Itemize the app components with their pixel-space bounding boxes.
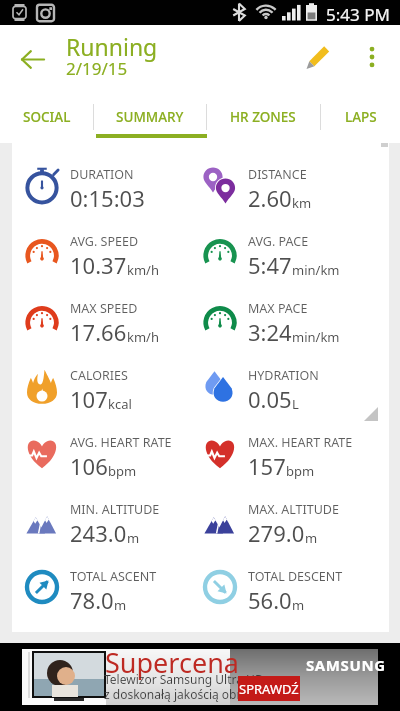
staticText: 279.0: [248, 518, 305, 548]
staticText: 5:47: [248, 250, 292, 280]
staticText: HR ZONES: [230, 108, 296, 126]
staticText: MAX PACE: [248, 300, 308, 317]
staticText: m: [292, 596, 305, 614]
staticText: 56.0: [248, 585, 292, 615]
staticText: Telewizor Samsung Ultra HD: [104, 671, 264, 687]
button[interactable]: DURATION: [12, 155, 190, 222]
staticText: Running: [66, 31, 158, 62]
staticText: CALORIES: [70, 367, 128, 384]
button[interactable]: AVG. HEART RATE: [12, 423, 190, 490]
button[interactable]: Edit: [296, 35, 340, 79]
staticText: z doskonałą jakością obrazu: [104, 686, 262, 702]
staticText: 5:43 PM: [326, 3, 390, 26]
staticText: AVG. HEART RATE: [70, 434, 172, 451]
button[interactable]: SOCIAL: [0, 97, 93, 137]
staticText: DURATION: [70, 166, 134, 183]
staticText: LAPS: [345, 108, 377, 126]
staticText: TOTAL ASCENT: [70, 568, 157, 585]
staticText: 3:24: [248, 317, 292, 347]
staticText: AVG. PACE: [248, 233, 309, 250]
staticText: Supercena: [105, 644, 239, 681]
button[interactable]: LAPS: [320, 97, 400, 137]
staticText: L: [292, 395, 299, 413]
button[interactable]: AVG. PACE: [190, 222, 368, 289]
staticText: m: [114, 596, 127, 614]
button[interactable]: MIN. ALTITUDE: [12, 490, 190, 557]
staticText: MAX. ALTITUDE: [248, 501, 339, 518]
button[interactable]: TOTAL ASCENT: [12, 557, 190, 624]
staticText: m: [305, 529, 318, 547]
staticText: 2/19/15: [66, 57, 128, 80]
button[interactable]: More options: [350, 35, 394, 79]
button[interactable]: Navigate up: [8, 35, 56, 83]
button[interactable]: DISTANCE: [190, 155, 368, 222]
staticText: SAMSUNG: [306, 655, 386, 675]
staticText: SUMMARY: [116, 108, 184, 126]
staticText: DISTANCE: [248, 166, 307, 183]
staticText: TOTAL DESCENT: [248, 568, 343, 585]
button[interactable]: TOTAL DESCENT: [190, 557, 368, 624]
staticText: 2.60: [248, 183, 292, 213]
staticText: MAX. HEART RATE: [248, 434, 353, 451]
staticText: bpm: [286, 462, 315, 480]
staticText: 106: [70, 451, 108, 481]
button[interactable]: SPRAWDŹ: [238, 676, 300, 701]
staticText: min/km: [292, 328, 340, 346]
staticText: 243.0: [70, 518, 127, 548]
button[interactable]: SUMMARY: [93, 97, 206, 137]
staticText: 157: [248, 451, 286, 481]
button[interactable]: MAX SPEED: [12, 289, 190, 356]
staticText: SPRAWDŹ: [239, 680, 299, 698]
staticText: HYDRATION: [248, 367, 319, 384]
staticText: 0:15:03: [70, 183, 145, 213]
staticText: 107: [70, 384, 108, 414]
button[interactable]: Supercena: [0, 643, 400, 711]
staticText: AVG. SPEED: [70, 233, 139, 250]
staticText: MIN. ALTITUDE: [70, 501, 160, 518]
staticText: SOCIAL: [23, 108, 71, 126]
button[interactable]: HYDRATION: [190, 356, 368, 423]
staticText: m: [127, 529, 140, 547]
button[interactable]: AVG. SPEED: [12, 222, 190, 289]
staticText: km/h: [127, 328, 159, 346]
button[interactable]: MAX PACE: [190, 289, 368, 356]
button[interactable]: HR ZONES: [206, 97, 320, 137]
staticText: min/km: [292, 261, 340, 279]
button[interactable]: MAX. HEART RATE: [190, 423, 368, 490]
staticText: 10.37: [70, 250, 127, 280]
staticText: km/h: [127, 261, 159, 279]
button[interactable]: MAX. ALTITUDE: [190, 490, 368, 557]
staticText: bpm: [108, 462, 137, 480]
staticText: MAX SPEED: [70, 300, 138, 317]
staticText: kcal: [108, 395, 132, 413]
staticText: 17.66: [70, 317, 127, 347]
staticText: 0.05: [248, 384, 292, 414]
staticText: 78.0: [70, 585, 114, 615]
button[interactable]: CALORIES: [12, 356, 190, 423]
staticText: km: [292, 194, 312, 212]
